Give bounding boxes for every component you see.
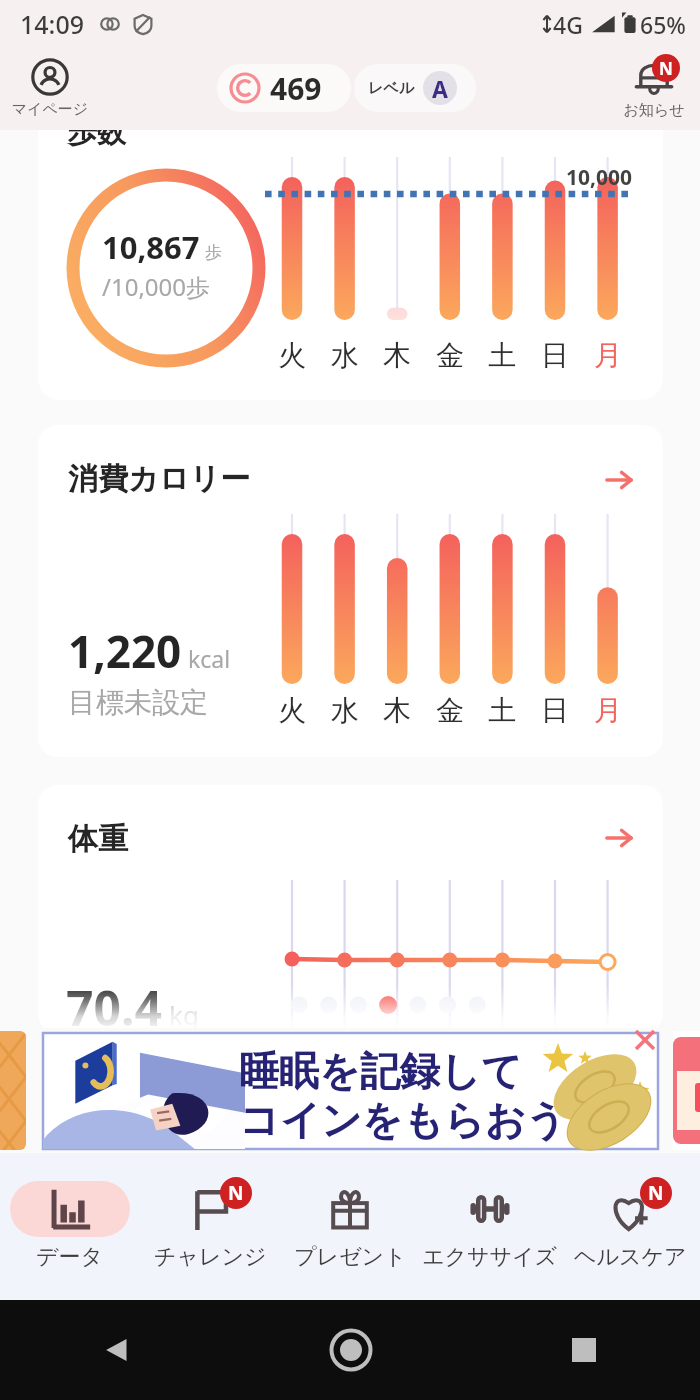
- staticText: 火: [270, 693, 314, 728]
- staticText: kg: [169, 997, 199, 1032]
- staticText: データ: [36, 1243, 104, 1271]
- button[interactable]: N: [560, 1153, 700, 1300]
- staticText: 歩数: [68, 114, 126, 151]
- staticText: N: [228, 1180, 244, 1206]
- staticText: 消費カロリー: [68, 460, 251, 498]
- staticText: ヘルスケア: [574, 1243, 687, 1271]
- button[interactable]: 体重: [38, 785, 663, 1033]
- staticText: 10,867: [102, 226, 200, 268]
- staticText: 日: [533, 693, 577, 728]
- button[interactable]: 詳細: [603, 464, 635, 496]
- staticText: 木: [375, 693, 419, 728]
- staticText: 歩: [205, 242, 222, 263]
- staticText: プレゼント: [294, 1243, 407, 1271]
- staticText: N: [648, 1180, 664, 1206]
- staticText: N: [659, 57, 673, 80]
- button[interactable]: レベル: [354, 64, 476, 112]
- button[interactable]: プレゼント: [280, 1153, 420, 1300]
- other: Recents: [569, 1335, 599, 1365]
- staticText: 4G: [553, 9, 583, 40]
- staticText: 70.4: [66, 975, 162, 1033]
- button[interactable]: N: [140, 1153, 280, 1300]
- button[interactable]: データ: [0, 1153, 140, 1300]
- button[interactable]: 消費カロリー: [38, 425, 663, 757]
- button[interactable]: 469: [217, 64, 351, 112]
- staticText: 金: [428, 693, 472, 728]
- staticText: マイページ: [4, 100, 96, 119]
- button[interactable]: マイページ: [4, 58, 96, 119]
- staticText: 目標未設定: [68, 685, 208, 720]
- staticText: 体重: [68, 820, 128, 858]
- staticText: 10,000: [566, 163, 633, 192]
- staticText: チャレンジ: [154, 1243, 267, 1271]
- staticText: 木: [375, 338, 419, 373]
- staticText: 日: [533, 338, 577, 373]
- staticText: 65%: [640, 9, 686, 40]
- staticText: 1,220: [68, 621, 182, 681]
- staticText: 14:09: [20, 7, 85, 41]
- staticText: 金: [428, 338, 472, 373]
- staticText: コインをもらおう！: [239, 1095, 607, 1145]
- staticText: kcal: [188, 643, 231, 674]
- staticText: 水: [323, 693, 367, 728]
- staticText: 月: [586, 693, 630, 728]
- staticText: 火: [270, 338, 314, 373]
- staticText: 月: [586, 338, 630, 373]
- other: Home: [329, 1328, 373, 1372]
- staticText: 土: [480, 693, 524, 728]
- staticText: 水: [323, 338, 367, 373]
- button[interactable]: お知らせ: [613, 55, 695, 120]
- staticText: 睡眠を記録して: [239, 1046, 522, 1096]
- staticText: 469: [270, 68, 322, 109]
- other: Back: [100, 1333, 134, 1367]
- staticText: エクササイズ: [422, 1243, 558, 1271]
- staticText: 土: [480, 338, 524, 373]
- staticText: A: [432, 73, 448, 104]
- staticText: /10,000歩: [102, 270, 210, 303]
- button[interactable]: エクササイズ: [420, 1153, 560, 1300]
- staticText: レベル: [368, 79, 415, 98]
- staticText: お知らせ: [613, 101, 695, 120]
- button[interactable]: 睡眠を記録して: [43, 1033, 658, 1149]
- button[interactable]: 歩数: [38, 96, 663, 400]
- button[interactable]: 詳細: [603, 822, 635, 854]
